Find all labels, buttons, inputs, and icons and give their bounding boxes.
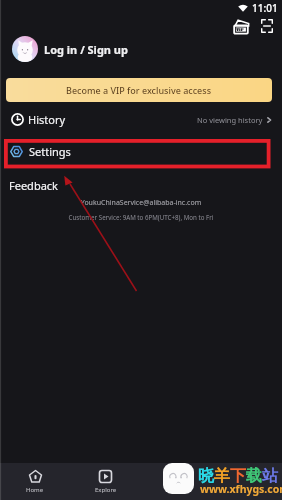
button[interactable]: Become a VIP for exclusive access (6, 78, 272, 102)
button[interactable]: Explore (70, 463, 141, 500)
button[interactable]: Log in / Sign up (0, 0, 282, 62)
staticText: 羊 (214, 466, 230, 486)
staticText: Settings (29, 144, 71, 159)
staticText: History (28, 112, 66, 127)
staticText: Become a VIP for exclusive access (66, 84, 212, 96)
staticText: No viewing history (197, 115, 263, 125)
staticText: Explore (95, 486, 117, 494)
staticText: 下 (230, 466, 246, 486)
button[interactable]: Settings (0, 139, 282, 164)
button[interactable]: Scan (258, 17, 276, 35)
staticText: www.xfhygs.com (200, 482, 282, 496)
button[interactable]: Feedback (0, 174, 282, 197)
staticText: Customer Service: 9AM to 6PM(UTC+8), Mon… (0, 213, 282, 221)
staticText: YoukuChinaService@alibaba-inc.com (0, 198, 282, 208)
button[interactable]: VIP membership (232, 17, 250, 35)
staticText: 站 (262, 466, 278, 486)
staticText: Log in / Sign up (44, 42, 128, 57)
button[interactable]: Home (0, 463, 70, 500)
staticText: Home (26, 486, 44, 494)
staticText: 晓 (198, 466, 214, 486)
staticText: 载 (246, 466, 262, 486)
staticText: 11:01 (252, 1, 278, 15)
staticText: Feedback (9, 178, 58, 193)
button[interactable]: History (0, 107, 282, 132)
